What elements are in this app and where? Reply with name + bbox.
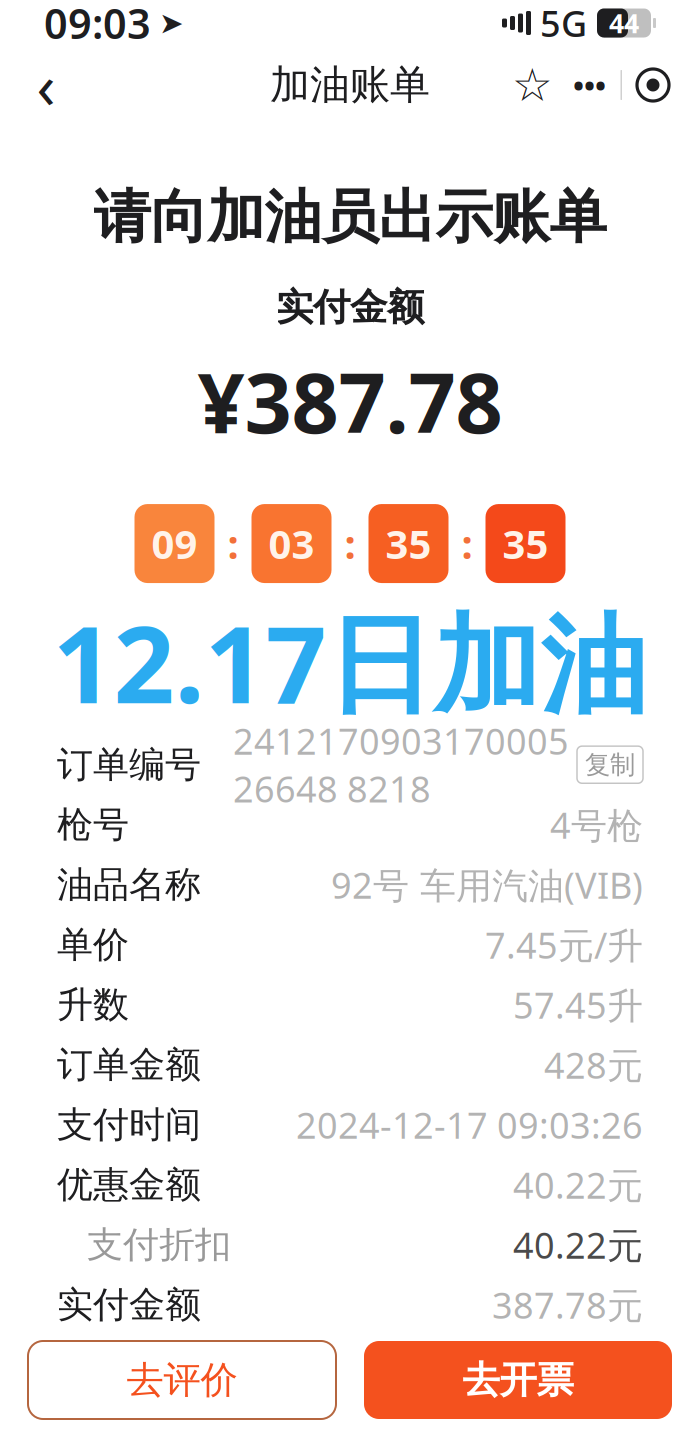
staticText: 12.17日加油 [52,591,647,733]
staticText: 40.22元 [513,1221,643,1269]
staticText: 44 [609,5,639,41]
staticText: ☆ [512,59,553,111]
staticText: 7.45元/升 [485,921,643,969]
staticText: 09:03 [44,0,151,50]
staticText: 支付时间 [57,1103,201,1147]
button[interactable]: Favorite [506,57,558,113]
staticText: 4号枪 [550,801,643,849]
staticText: 09 [151,517,197,570]
button[interactable]: 去开票 [364,1341,672,1419]
button[interactable]: 去评价 [28,1341,336,1419]
staticText: : [461,517,472,570]
staticText: 支付折扣 [87,1223,231,1267]
staticText: 35 [502,517,548,570]
staticText: 57.45升 [513,981,643,1029]
button[interactable]: 复制 [577,746,643,783]
staticText: ‹ [36,44,55,126]
staticText: ••• [573,65,606,104]
staticText: 03 [268,517,314,570]
staticText: 单价 [57,923,129,967]
staticText: 订单编号 [57,743,201,787]
staticText: 油品名称 [57,863,201,907]
staticText: 387.78元 [492,1281,643,1329]
staticText: 去评价 [126,1357,237,1403]
staticText: 现金支付 [87,1343,231,1387]
staticText: 升数 [57,983,129,1027]
staticText: 2024-12-17 09:03:26 [296,1101,643,1149]
staticText: : [344,517,355,570]
staticText: : [227,517,238,570]
staticText: 35 [385,517,431,570]
staticText: 92号 车用汽油(VIB) [331,861,643,909]
staticText: 241217090317000526648 8218 [233,717,569,812]
button[interactable]: More [558,57,620,113]
staticText: 枪号 [57,803,129,847]
staticText: 加油账单 [270,60,430,109]
staticText: 实付金额 [57,1283,201,1327]
staticText: 请向加油员出示账单 [93,182,606,252]
staticText: 5G [540,0,587,47]
staticText: 40.22元 [513,1161,643,1209]
staticText: 387.78元 [492,1341,643,1389]
button[interactable]: Back [16,55,76,115]
staticText: 实付金额 [276,284,424,330]
staticText: 订单金额 [57,1043,201,1087]
staticText: 优惠金额 [57,1163,201,1207]
staticText: 428元 [544,1041,643,1089]
button[interactable]: Target [622,57,684,113]
staticText: ¥387.78 [197,346,502,456]
staticText: 复制 [585,749,635,780]
staticText: 去开票 [462,1357,573,1403]
staticText: ➤ [159,6,184,40]
